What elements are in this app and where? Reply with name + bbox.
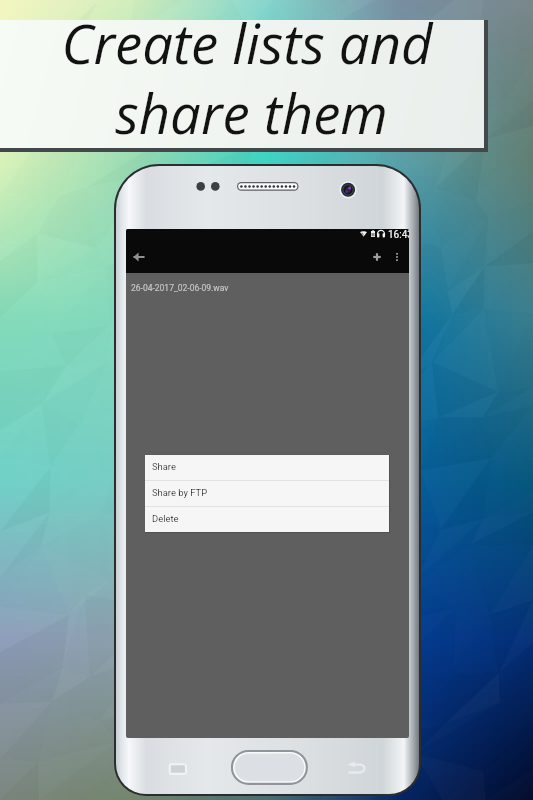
button[interactable]: More options bbox=[386, 246, 408, 268]
button[interactable]: Back bbox=[128, 246, 150, 268]
staticText: Create lists and bbox=[61, 6, 433, 80]
button[interactable]: Share by FTP bbox=[145, 481, 389, 506]
staticText: 16:43 bbox=[388, 229, 409, 241]
button[interactable]: Add bbox=[366, 246, 388, 268]
staticText: 26-04-2017_02-06-09.wav bbox=[131, 283, 229, 293]
button[interactable]: Delete bbox=[145, 507, 389, 532]
staticText: Delete bbox=[152, 513, 179, 524]
button[interactable]: 26-04-2017_02-06-09.wav bbox=[126, 273, 409, 305]
button[interactable]: Share bbox=[145, 455, 389, 480]
staticText: Share bbox=[152, 461, 176, 472]
staticText: Share by FTP bbox=[152, 487, 208, 498]
staticText: share them bbox=[115, 76, 388, 150]
